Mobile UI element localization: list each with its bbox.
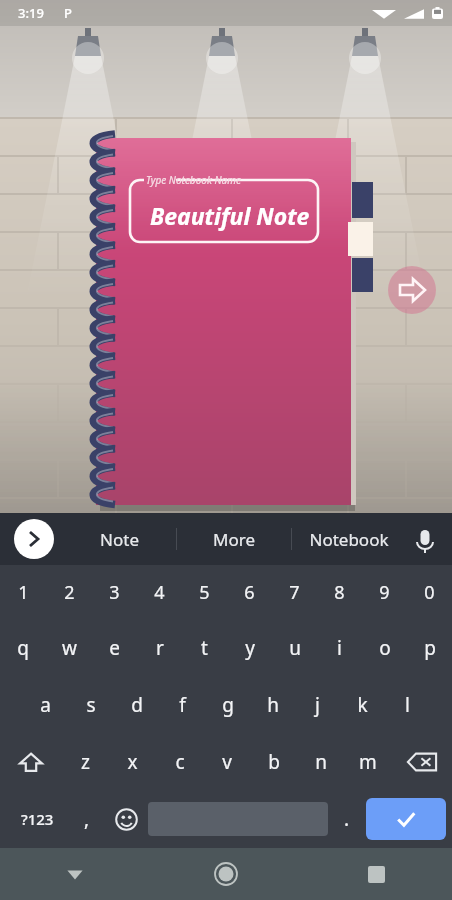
button[interactable]: Voice input [410, 524, 440, 554]
staticText: j [315, 692, 320, 718]
button[interactable]: 7 [272, 565, 317, 619]
button[interactable]: i [317, 619, 362, 676]
staticText: f [179, 692, 186, 718]
staticText: g [222, 692, 234, 718]
button[interactable]: 4 [137, 565, 182, 619]
staticText: 4 [154, 580, 165, 605]
staticText: k [357, 692, 368, 718]
staticText: More [213, 528, 255, 551]
button[interactable]: c [156, 733, 203, 790]
button[interactable]: u [272, 619, 317, 676]
staticText: u [289, 635, 301, 661]
button[interactable]: q [0, 619, 46, 676]
staticText: y [245, 635, 255, 661]
button[interactable]: Note [62, 513, 176, 565]
button[interactable]: 0 [407, 565, 452, 619]
button[interactable]: o [362, 619, 407, 676]
staticText: Beautiful Note [150, 200, 310, 231]
button[interactable]: g [205, 676, 250, 733]
button[interactable]: 5 [182, 565, 227, 619]
staticText: 8 [334, 580, 345, 605]
staticText: 5 [199, 580, 210, 605]
staticText: Note [100, 528, 139, 551]
button[interactable]: z [62, 733, 109, 790]
staticText: 9 [379, 580, 390, 605]
button[interactable]: t [182, 619, 227, 676]
button[interactable]: l [385, 676, 430, 733]
button[interactable]: n [297, 733, 344, 790]
staticText: Type Notebook Name [146, 173, 241, 187]
staticText: m [359, 749, 377, 775]
staticText: P [64, 4, 72, 22]
button[interactable]: Notebook [292, 513, 406, 565]
button[interactable]: f [160, 676, 205, 733]
button[interactable]: y [227, 619, 272, 676]
staticText: n [315, 749, 327, 775]
button[interactable]: 1 [0, 565, 46, 619]
button[interactable]: x [109, 733, 156, 790]
button[interactable]: s [68, 676, 114, 733]
staticText: 3 [109, 580, 120, 605]
staticText: s [86, 692, 96, 718]
button[interactable]: Recents [301, 848, 452, 900]
staticText: 7 [289, 580, 300, 605]
staticText: d [131, 692, 143, 718]
button[interactable]: Home [150, 848, 301, 900]
button[interactable]: m [344, 733, 391, 790]
button[interactable]: 8 [317, 565, 362, 619]
button[interactable]: e [92, 619, 137, 676]
button[interactable]: ?123 [6, 795, 68, 843]
button[interactable]: 2 [46, 565, 92, 619]
staticText: v [222, 749, 232, 775]
button[interactable]: w [46, 619, 92, 676]
button[interactable]: d [114, 676, 160, 733]
button[interactable]: 6 [227, 565, 272, 619]
staticText: h [267, 692, 279, 718]
staticText: . [344, 806, 350, 832]
staticText: c [175, 749, 185, 775]
staticText: i [337, 635, 342, 661]
staticText: 2 [64, 580, 75, 605]
button[interactable]: Hide keyboard [0, 848, 150, 900]
staticText: , [84, 806, 90, 832]
button[interactable]: Expand suggestions [14, 519, 54, 559]
staticText: o [379, 635, 391, 661]
button[interactable]: p [407, 619, 452, 676]
button[interactable]: Type Notebook Name [130, 180, 318, 242]
button[interactable]: r [137, 619, 182, 676]
button[interactable]: h [250, 676, 295, 733]
staticText: e [109, 635, 120, 661]
staticText: p [424, 635, 436, 661]
staticText: 1 [18, 580, 29, 605]
staticText: q [17, 635, 29, 661]
button[interactable]: 3 [92, 565, 137, 619]
button[interactable]: a [22, 676, 68, 733]
button[interactable]: k [340, 676, 385, 733]
button[interactable]: Shift [0, 733, 62, 790]
staticText: a [40, 692, 51, 718]
button[interactable]: Emoji [105, 795, 148, 843]
button[interactable]: v [203, 733, 250, 790]
button[interactable]: , [68, 795, 105, 843]
staticText: t [201, 635, 208, 661]
staticText: ?123 [21, 809, 54, 829]
button[interactable]: . [328, 795, 366, 843]
staticText: z [81, 749, 90, 775]
staticText: Notebook [309, 528, 389, 551]
button[interactable]: 9 [362, 565, 407, 619]
staticText: 6 [244, 580, 255, 605]
staticText: l [405, 692, 410, 718]
button[interactable]: More [177, 513, 291, 565]
staticText: r [156, 635, 164, 661]
button[interactable]: Next [388, 266, 436, 314]
staticText: 0 [424, 580, 435, 605]
button[interactable]: j [295, 676, 340, 733]
button[interactable]: Backspace [391, 733, 452, 790]
staticText: 3:19 [18, 4, 44, 22]
button[interactable]: Done [366, 798, 446, 840]
staticText: b [268, 749, 280, 775]
staticText: x [127, 749, 138, 775]
staticText: w [62, 635, 77, 661]
button[interactable]: b [250, 733, 297, 790]
